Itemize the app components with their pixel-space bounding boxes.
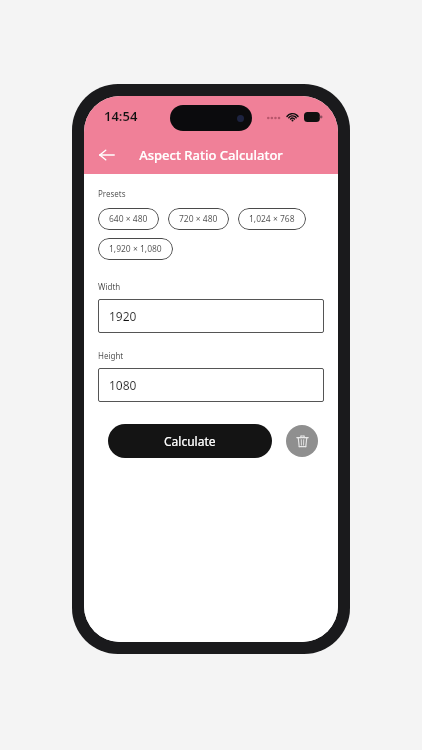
staticText: 1,920 × 1,080	[109, 243, 162, 255]
staticText: Aspect Ratio Calculator	[139, 146, 283, 164]
button[interactable]: 1,024 × 768	[238, 208, 306, 230]
button[interactable]: 1080	[98, 368, 324, 402]
staticText: 1920	[109, 308, 137, 324]
button[interactable]: 1920	[98, 299, 324, 333]
staticText: Presets	[98, 188, 126, 199]
button[interactable]: 720 × 480	[168, 208, 229, 230]
staticText: Calculate	[164, 433, 216, 449]
button[interactable]: Calculate	[108, 424, 272, 458]
staticText: Height	[98, 350, 124, 361]
staticText: 14:54	[104, 107, 138, 125]
button[interactable]: Delete	[286, 425, 318, 457]
button[interactable]: Back	[90, 138, 124, 172]
button[interactable]: 640 × 480	[98, 208, 159, 230]
staticText: 720 × 480	[179, 213, 218, 225]
button[interactable]: 1,920 × 1,080	[98, 238, 173, 260]
staticText: 640 × 480	[109, 213, 148, 225]
staticText: 1080	[109, 377, 137, 393]
staticText: 1,024 × 768	[249, 213, 295, 225]
staticText: Width	[98, 281, 121, 292]
